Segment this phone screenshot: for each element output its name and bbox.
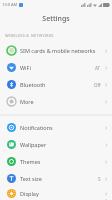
button[interactable]: Display [0, 187, 112, 200]
staticText: 1:50 AM [2, 2, 18, 7]
button[interactable]: Wallpaper [0, 136, 112, 153]
button[interactable]: WiFi [0, 59, 112, 76]
staticText: Text size [20, 175, 98, 182]
staticText: Bluetooth [20, 81, 94, 88]
staticText: Display [20, 190, 104, 197]
button[interactable]: Notifications [0, 119, 112, 136]
staticText: WiFi [20, 64, 95, 71]
staticText: WIRELESS & NETWORKS [5, 33, 54, 38]
staticText: Off [94, 82, 101, 88]
button[interactable]: SIM cards & mobile networks [0, 42, 112, 59]
staticText: Themes [20, 158, 104, 165]
staticText: Notifications [20, 124, 104, 131]
button[interactable]: More [0, 93, 112, 110]
button[interactable]: Bluetooth [0, 76, 112, 93]
staticText: Wallpaper [20, 141, 104, 148]
staticText: AT [95, 65, 101, 71]
staticText: S [98, 176, 101, 182]
button[interactable]: Text size [0, 170, 112, 187]
staticText: SIM cards & mobile networks [20, 47, 104, 54]
button[interactable]: Themes [0, 153, 112, 170]
staticText: More [20, 98, 104, 105]
staticText: Settings [42, 14, 70, 24]
